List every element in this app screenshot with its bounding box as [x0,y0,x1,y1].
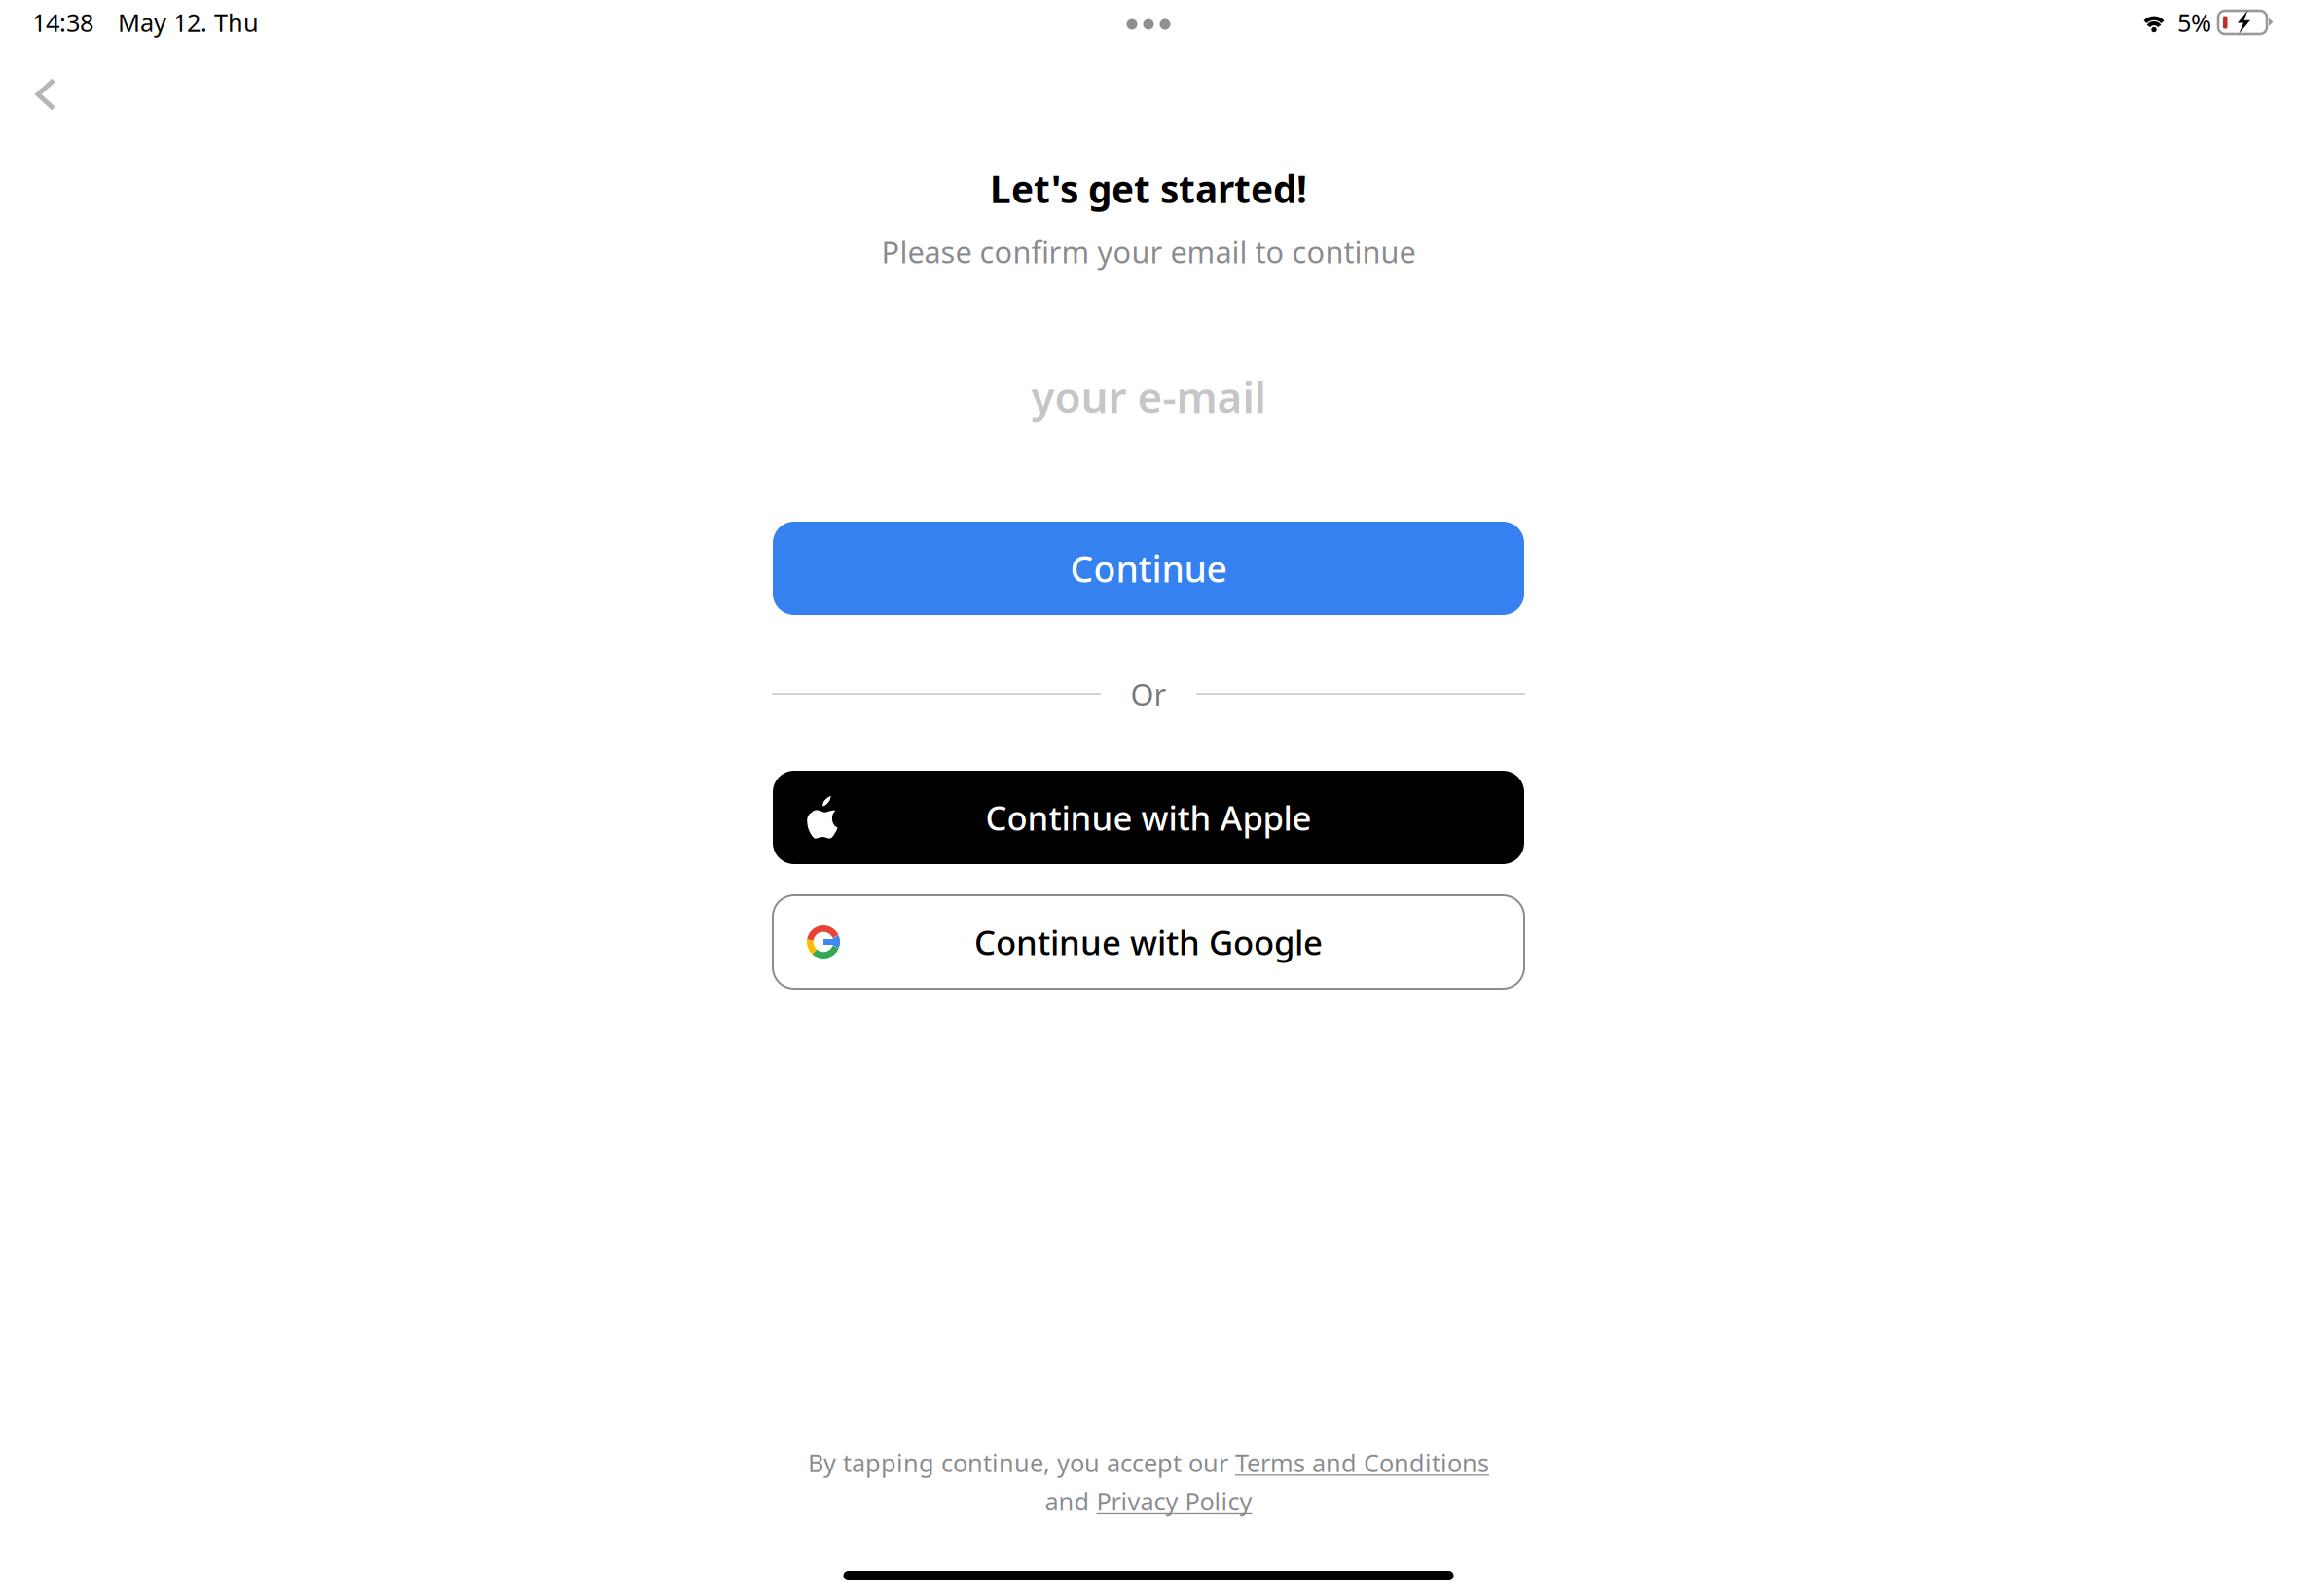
button[interactable]: Continue with Google [773,895,1524,989]
staticText: 5% [2177,6,2211,39]
staticText: Continue with Google [974,920,1323,964]
staticText: Let's get started! [990,163,1307,213]
button[interactable]: Terms and Conditions [1235,1446,1489,1479]
staticText: your e-mail [1031,368,1266,425]
staticText: By tapping continue, you accept our [808,1446,1235,1479]
staticText: Please confirm your email to continue [881,232,1416,272]
staticText: Continue with Apple [985,795,1312,840]
staticText: May 12. Thu [118,6,259,39]
button[interactable]: Continue with Apple [773,771,1524,864]
button[interactable]: Privacy Policy [1096,1485,1252,1517]
staticText: Continue [1070,544,1227,592]
staticText: 14:38 [32,6,93,39]
staticText: Or [1130,674,1167,714]
button[interactable]: Continue [773,522,1524,615]
staticText: Privacy Policy [1096,1485,1252,1517]
staticText: and [1045,1485,1096,1517]
staticText: Terms and Conditions [1235,1446,1489,1479]
button[interactable]: Back [7,55,85,133]
